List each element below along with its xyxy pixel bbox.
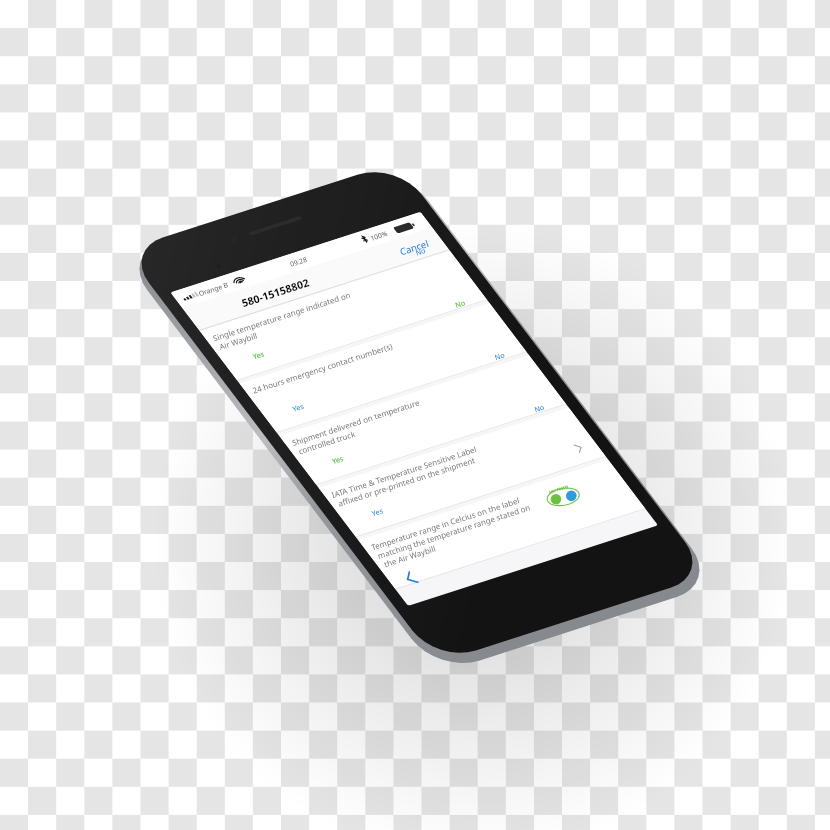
button[interactable]: iPhone mockup showing shipment checklist [0, 0, 830, 830]
